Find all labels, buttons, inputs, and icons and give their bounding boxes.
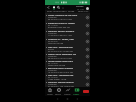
button[interactable]: Download — [85, 39, 89, 43]
staticText: Compass Efficacy Imagine — [48, 30, 75, 33]
button[interactable]: Compass Outlook Reform — [45, 80, 90, 87]
staticText: 02-06-2021 — [48, 40, 58, 43]
button[interactable]: More options — [61, 6, 65, 10]
button[interactable]: Live — [81, 87, 90, 96]
staticText: 10-22-2021 5:03 PM 512 MB — [48, 71, 73, 74]
staticText: Battles — [48, 48, 55, 51]
button[interactable]: Download — [85, 75, 89, 79]
staticText: Trends — [64, 93, 71, 96]
button[interactable]: Videos — [72, 87, 81, 96]
staticText: Sheehans Clone In: Adagio — [48, 22, 75, 25]
staticText: Complete — [48, 32, 57, 35]
staticText: Barricade Flash: Outback — [48, 67, 73, 70]
button[interactable]: Sports — [54, 87, 63, 96]
button[interactable]: Download — [85, 61, 89, 65]
staticText: Videos — [73, 93, 80, 96]
staticText: Mini Last : Nakabook Edit — [48, 74, 74, 77]
staticText: Bluetooth codec 960 MB — [48, 26, 70, 29]
staticText: Netflix Prega Movie Pack — [48, 60, 73, 63]
button[interactable]: Movie: Laurence Of The Mark — [45, 13, 90, 21]
staticText: 08-08-2021 3:12 PM 1.8 GB — [48, 57, 72, 60]
staticText: Complete — [48, 55, 57, 58]
button[interactable]: Makers Flock Twinpoint: Me — [45, 52, 90, 59]
staticText: Movie: Laurence Of The Mark — [48, 14, 78, 17]
staticText: Compass Outlook Reform — [48, 81, 74, 84]
staticText: Complete — [48, 69, 57, 72]
staticText: Mini cast 640 MB — [48, 42, 64, 45]
button[interactable]: Compass Efficacy Imagine — [45, 29, 90, 37]
staticText: 03-14-2021 — [48, 76, 58, 79]
button[interactable]: Download — [85, 31, 89, 35]
button[interactable]: Search — [56, 5, 61, 10]
staticText: 28.4 GB — [77, 8, 84, 10]
staticText: Audio stream 1.2 GB — [48, 78, 67, 81]
staticText: 08-25-2021 4:18 PM 1.2 GB — [48, 18, 72, 21]
staticText: 04-11-2021 — [48, 24, 58, 27]
button[interactable]: Download — [85, 23, 89, 27]
button[interactable]: Downloads — [51, 5, 56, 10]
button[interactable]: Trends — [63, 87, 72, 96]
staticText: Storage — [76, 5, 84, 8]
button[interactable]: Account — [85, 6, 89, 10]
staticText: Mini Last : Samsung trim — [48, 46, 73, 49]
button[interactable]: Netflix Prega Movie Pack — [45, 59, 90, 66]
button[interactable]: Home — [45, 87, 54, 96]
button[interactable]: Back — [46, 5, 51, 10]
staticText: Complete — [48, 83, 57, 86]
button[interactable]: Mini Last : Samsung trim — [45, 45, 90, 52]
button[interactable]: Barricade Flash: Outback — [45, 66, 90, 73]
button[interactable]: Sheehans Clone In: Adagio — [45, 21, 90, 29]
button[interactable]: Mini Last : Nakabook Edit — [45, 73, 90, 80]
button[interactable]: Chipbook SI : Tridies, Vibe — [45, 37, 90, 45]
button[interactable]: Download — [85, 47, 89, 51]
staticText: SELECT ALL — [78, 10, 89, 13]
staticText: 07-29-2021 11:40 AM 840 MB — [48, 85, 74, 88]
staticText: SORT: NEWEST FIRST FILTER — [47, 10, 75, 13]
staticText: 02-02-2021 6:31 AM 390 MB — [48, 50, 73, 53]
staticText: 09-17-2021 — [48, 62, 58, 65]
staticText: Sports — [55, 93, 62, 96]
staticText: Video track 720 MB — [48, 64, 66, 67]
button[interactable]: Download — [85, 68, 89, 72]
button[interactable]: Download — [85, 15, 89, 19]
staticText: Complete — [48, 16, 57, 19]
button[interactable]: SORT: NEWEST FIRST FILTER — [45, 10, 90, 13]
staticText: Home — [47, 93, 53, 96]
button[interactable]: Download — [85, 54, 89, 58]
staticText: Chipbook SI : Tridies, Vibe — [48, 38, 74, 41]
staticText: 11-03-2021 7:05 PM 1.1 GB — [48, 34, 72, 37]
staticText: Makers Flock Twinpoint: Me — [48, 53, 76, 56]
button[interactable]: Download — [85, 82, 89, 86]
